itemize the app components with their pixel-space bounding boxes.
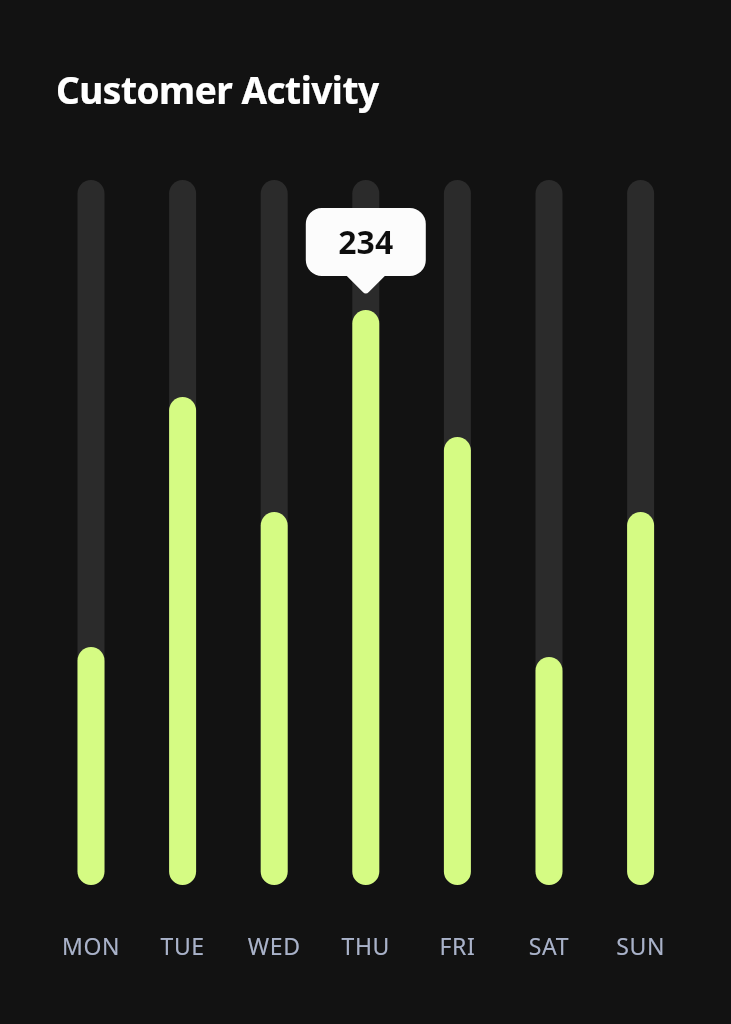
button[interactable]: Customer Activity weekly bar chart: [0, 0, 731, 1024]
